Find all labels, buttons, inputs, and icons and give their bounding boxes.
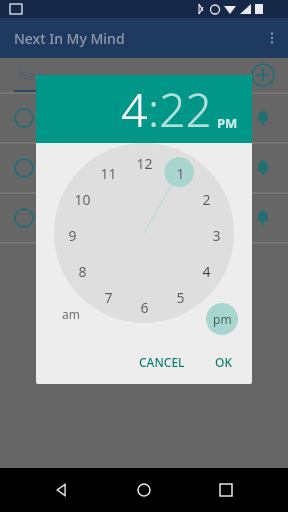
staticText: 9	[68, 226, 77, 245]
staticText: 12	[136, 154, 153, 173]
button[interactable]: 2	[195, 188, 217, 210]
button[interactable]	[0, 194, 288, 242]
staticText: am	[62, 306, 80, 322]
button[interactable]	[0, 144, 288, 192]
button[interactable]: pm	[206, 303, 238, 335]
button[interactable]: 6	[133, 296, 155, 318]
button[interactable]: CANCEL	[131, 348, 193, 376]
button[interactable]	[0, 94, 288, 142]
button[interactable]: 10	[71, 188, 93, 210]
button[interactable]: 1	[169, 162, 191, 184]
button[interactable]: 3	[205, 224, 227, 246]
button[interactable]: 11	[97, 162, 119, 184]
staticText: pm	[213, 311, 232, 327]
staticText: 3	[212, 226, 221, 245]
button[interactable]: 9	[61, 224, 83, 246]
staticText: 11	[100, 164, 117, 183]
button[interactable]: 7	[97, 286, 119, 308]
staticText: CANCEL	[139, 354, 185, 370]
button[interactable]: Add	[248, 60, 278, 90]
button[interactable]: 4	[195, 260, 217, 282]
button[interactable]: Home	[124, 470, 164, 510]
staticText: 6	[140, 298, 149, 317]
staticText: 10	[74, 190, 91, 209]
staticText: OK	[215, 354, 232, 370]
staticText: 8	[78, 262, 87, 281]
staticText: 2	[202, 190, 211, 209]
button[interactable]: Recents	[206, 470, 246, 510]
staticText: 4	[202, 262, 211, 281]
button[interactable]: am	[56, 299, 86, 329]
staticText: 5	[176, 288, 185, 307]
button[interactable]: PM	[217, 114, 238, 132]
button[interactable]: 8	[71, 260, 93, 282]
staticText: 7	[104, 288, 113, 307]
button[interactable]: More options	[256, 22, 288, 54]
button[interactable]: Back	[42, 470, 82, 510]
button[interactable]: 5	[169, 286, 191, 308]
button[interactable]: :22	[148, 78, 212, 141]
button[interactable]: 12	[133, 152, 155, 174]
staticText: New	[18, 66, 46, 84]
button[interactable]: OK	[207, 348, 240, 376]
button[interactable]: 4	[121, 78, 148, 141]
staticText: 1	[176, 164, 185, 183]
staticText: Next In My Mind	[14, 29, 125, 48]
